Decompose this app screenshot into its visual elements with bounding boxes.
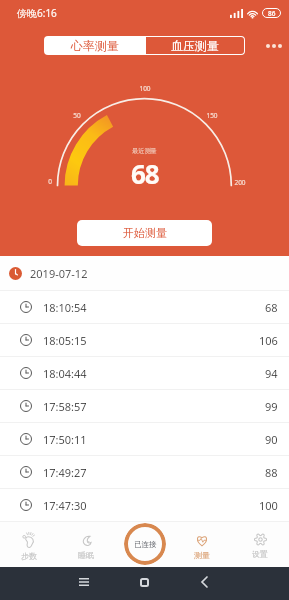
staticText: 18:05:15	[43, 333, 87, 348]
staticText: 步数	[21, 551, 37, 561]
staticText: 106	[259, 333, 278, 348]
staticText: 68	[131, 156, 159, 191]
staticText: 血压测量	[171, 38, 219, 53]
button[interactable]: Recents	[71, 569, 97, 595]
staticText: 18:04:44	[43, 366, 87, 381]
button[interactable]: 18:04:44	[0, 357, 289, 389]
button[interactable]: More options	[263, 36, 285, 55]
button[interactable]: 测量	[173, 521, 231, 567]
staticText: 开始测量	[123, 226, 167, 240]
staticText: 100	[259, 498, 278, 513]
staticText: 150	[206, 111, 218, 120]
button[interactable]: 步数	[0, 521, 57, 567]
staticText: 17:49:27	[43, 465, 87, 480]
button[interactable]: 17:49:27	[0, 456, 289, 488]
button[interactable]: 17:47:30	[0, 489, 289, 521]
button[interactable]: 17:50:11	[0, 423, 289, 455]
staticText: 已连接	[134, 540, 157, 549]
staticText: 94	[265, 366, 278, 381]
staticText: 68	[265, 300, 278, 315]
staticText: 0	[48, 177, 52, 186]
button[interactable]: 睡眠	[57, 521, 115, 567]
button[interactable]: Back	[191, 569, 217, 595]
button[interactable]: 心率测量	[44, 36, 145, 55]
button[interactable]: 18:05:15	[0, 324, 289, 356]
staticText: 17:50:11	[43, 432, 87, 447]
staticText: 设置	[252, 549, 268, 559]
staticText: 17:47:30	[43, 498, 87, 513]
button[interactable]: 设置	[231, 521, 289, 567]
staticText: 17:58:57	[43, 399, 87, 414]
staticText: 99	[265, 399, 278, 414]
staticText: 心率测量	[71, 38, 119, 53]
button[interactable]: Home	[131, 569, 157, 595]
staticText: 88	[265, 465, 278, 480]
staticText: 测量	[194, 550, 210, 560]
staticText: 2019-07-12	[30, 266, 88, 281]
button[interactable]: 18:10:54	[0, 291, 289, 323]
button[interactable]: 17:58:57	[0, 390, 289, 422]
button[interactable]: 开始测量	[77, 220, 212, 246]
staticText: 200	[234, 178, 246, 187]
staticText: 18:10:54	[43, 300, 87, 315]
staticText: 86	[268, 9, 276, 18]
staticText: 最近测量	[132, 147, 157, 155]
button[interactable]: 已连接	[124, 523, 166, 565]
staticText: 50	[73, 111, 81, 120]
staticText: 100	[139, 84, 151, 93]
staticText: 90	[265, 432, 278, 447]
staticText: 睡眠	[78, 550, 94, 560]
button[interactable]: 血压测量	[145, 36, 245, 55]
staticText: 傍晚6:16	[17, 6, 57, 20]
